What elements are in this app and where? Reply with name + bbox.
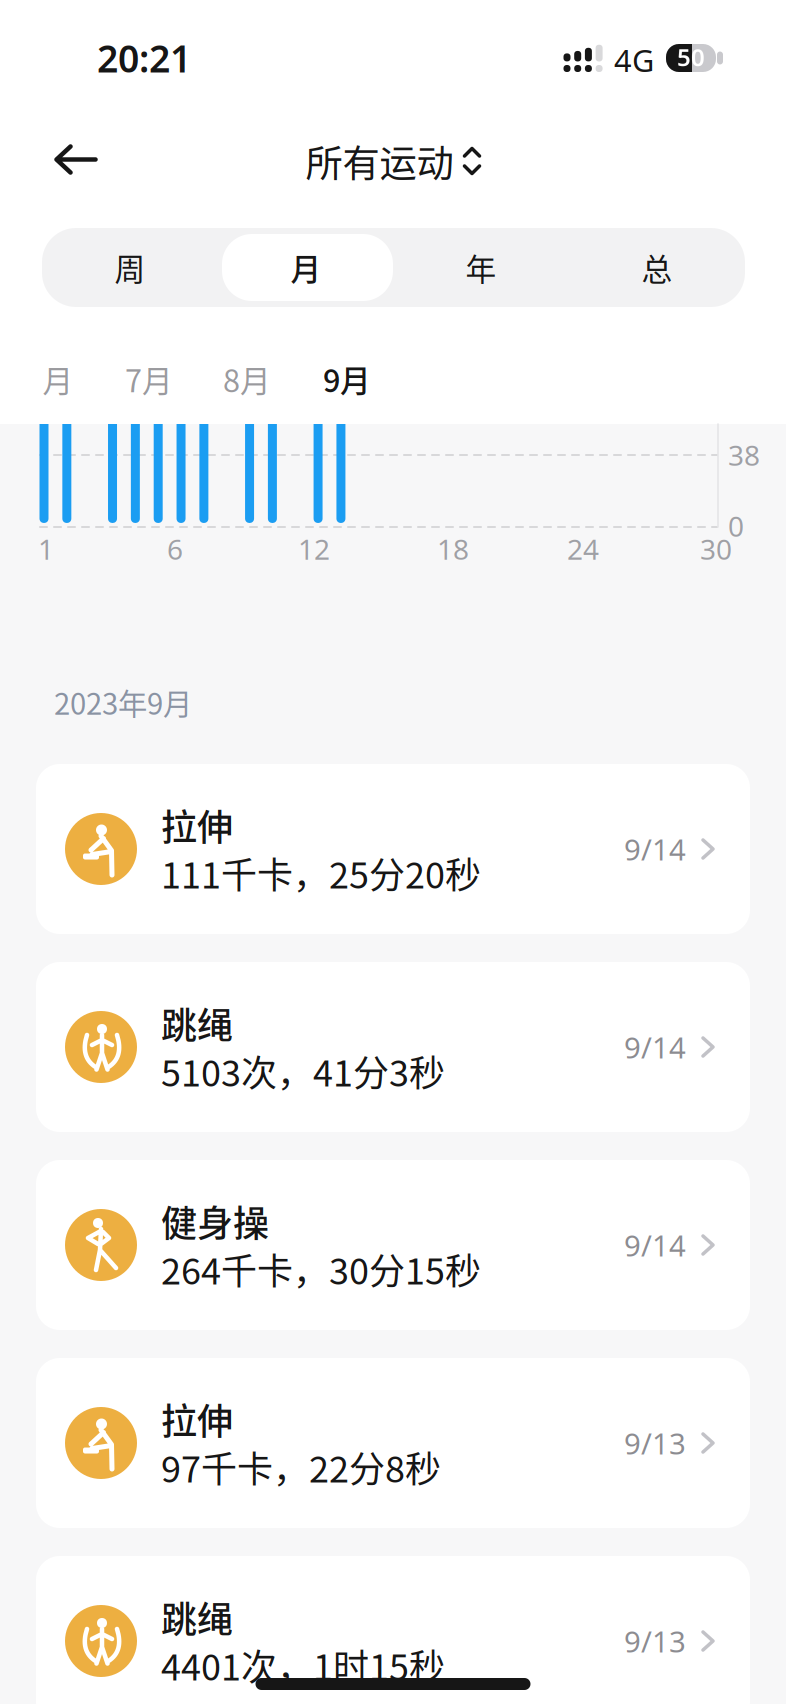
button[interactable]: 跳绳 bbox=[36, 1556, 750, 1704]
staticText: 30 bbox=[700, 530, 732, 568]
staticText: 9/14 bbox=[624, 1225, 686, 1264]
staticText: 月 bbox=[290, 249, 321, 286]
button[interactable]: 周 bbox=[45, 228, 215, 307]
staticText: 7月 bbox=[125, 361, 173, 397]
staticText: 6 bbox=[167, 530, 183, 568]
staticText: 5103次，41分3秒 bbox=[161, 1049, 445, 1092]
staticText: 所有运动 bbox=[305, 139, 453, 183]
staticText: 9/14 bbox=[624, 829, 686, 868]
button[interactable]: 月 bbox=[221, 228, 391, 307]
staticText: 拉伸 bbox=[161, 804, 233, 846]
staticText: 9/13 bbox=[624, 1621, 686, 1660]
staticText: 年 bbox=[465, 249, 496, 286]
staticText: 9月 bbox=[323, 361, 371, 397]
staticText: 97千卡，22分8秒 bbox=[161, 1445, 441, 1488]
staticText: 周 bbox=[114, 249, 145, 286]
staticText: 4G bbox=[614, 40, 654, 80]
staticText: 健身操 bbox=[161, 1200, 269, 1242]
staticText: 跳绳 bbox=[161, 1002, 233, 1044]
button[interactable]: 8月 bbox=[223, 361, 271, 397]
staticText: 20:21 bbox=[97, 33, 191, 83]
button[interactable]: 跳绳 bbox=[36, 962, 750, 1132]
staticText: 50 bbox=[677, 41, 705, 73]
staticText: 月 bbox=[42, 361, 73, 397]
button[interactable]: 月 bbox=[42, 361, 73, 397]
staticText: 111千卡，25分20秒 bbox=[161, 851, 481, 894]
staticText: 总 bbox=[641, 249, 672, 286]
staticText: 跳绳 bbox=[161, 1596, 233, 1638]
staticText: 9/13 bbox=[624, 1423, 686, 1462]
staticText: 264千卡，30分15秒 bbox=[161, 1247, 481, 1290]
button[interactable]: 总 bbox=[572, 228, 742, 307]
button[interactable]: 年 bbox=[396, 228, 566, 307]
staticText: 2023年9月 bbox=[54, 685, 192, 719]
staticText: 1 bbox=[38, 530, 54, 568]
staticText: 4401次，1时15秒 bbox=[161, 1643, 445, 1686]
button[interactable]: 拉伸 bbox=[36, 1358, 750, 1528]
button[interactable]: 9月 bbox=[323, 361, 371, 397]
staticText: 12 bbox=[298, 530, 330, 568]
staticText: 8月 bbox=[223, 361, 271, 397]
button[interactable]: 7月 bbox=[125, 361, 173, 397]
staticText: 18 bbox=[437, 530, 469, 568]
button[interactable]: 健身操 bbox=[36, 1160, 750, 1330]
staticText: 38 bbox=[728, 436, 760, 474]
button[interactable]: Back bbox=[54, 144, 97, 174]
staticText: 9/14 bbox=[624, 1027, 686, 1066]
staticText: 0 bbox=[728, 507, 744, 545]
button[interactable]: 所有运动 bbox=[305, 139, 480, 183]
staticText: 拉伸 bbox=[161, 1398, 233, 1440]
button[interactable]: 拉伸 bbox=[36, 764, 750, 934]
staticText: 24 bbox=[567, 530, 599, 568]
